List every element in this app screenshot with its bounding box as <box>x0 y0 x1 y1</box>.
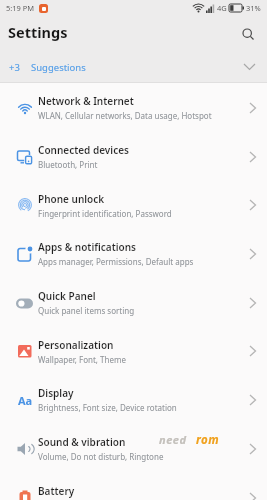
staticText: Sound & vibration <box>38 435 126 449</box>
button[interactable]: Network & Internet <box>0 83 267 132</box>
button[interactable]: Battery <box>0 473 267 500</box>
staticText: 31% <box>246 3 261 13</box>
staticText: Wallpaper, Font, Theme <box>38 354 126 365</box>
staticText: 4G <box>217 3 227 13</box>
button[interactable]: Personalization <box>0 327 267 375</box>
button[interactable]: Phone unlock <box>0 181 267 229</box>
staticText: Personalization <box>38 338 114 352</box>
staticText: Quick panel items sorting <box>38 305 135 316</box>
staticText: +3 <box>9 61 20 74</box>
staticText: Apps manager, Permissions, Default apps <box>38 256 194 267</box>
button[interactable]: Apps & notifications <box>0 229 267 278</box>
staticText: Connected devices <box>38 143 129 157</box>
staticText: Fingerprint identification, Password <box>38 208 172 219</box>
staticText: Suggestions <box>31 61 86 74</box>
staticText: Bluetooth, Print <box>38 159 98 170</box>
staticText: Volume, Do not disturb, Ringtone <box>38 451 164 462</box>
staticText: Battery <box>38 484 75 498</box>
staticText: Display <box>38 386 74 400</box>
button[interactable]: Quick Panel <box>0 278 267 327</box>
staticText: Apps & notifications <box>38 240 137 254</box>
staticText: Network & Internet <box>38 94 134 108</box>
staticText: need <box>159 432 187 447</box>
staticText: rom <box>196 432 220 448</box>
staticText: Brightness, Font size, Device rotation <box>38 402 177 413</box>
button[interactable]: +3 <box>0 52 267 82</box>
staticText: Settings <box>8 22 68 42</box>
staticText: Phone unlock <box>38 192 105 206</box>
staticText: 5:19 PM <box>6 3 35 13</box>
button[interactable]: Connected devices <box>0 132 267 181</box>
button[interactable]: Sound & vibration <box>0 424 267 473</box>
staticText: Aa <box>18 393 33 408</box>
staticText: WLAN, Cellular networks, Data usage, Hot… <box>38 110 212 121</box>
button[interactable]: Aa <box>0 375 267 424</box>
staticText: Quick Panel <box>38 289 96 303</box>
button[interactable] <box>239 25 257 43</box>
